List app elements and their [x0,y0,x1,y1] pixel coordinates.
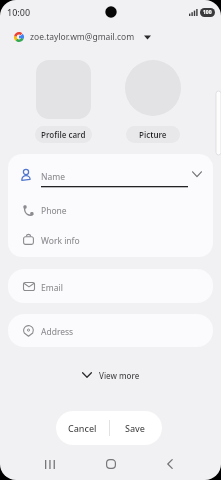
button[interactable] [158,452,182,476]
staticText: Address [41,326,74,338]
staticText: Name [41,171,65,183]
staticText: Phone [41,205,67,217]
staticText: Profile card [41,129,86,140]
button[interactable]: zoe.taylor.wm@gmail.com [14,28,151,46]
staticText: zoe.taylor.wm@gmail.com [30,31,135,43]
button[interactable]: Save [109,411,162,445]
button[interactable] [125,60,181,116]
button[interactable] [99,452,123,476]
button[interactable]: Email [8,269,213,303]
staticText: View more [99,370,140,381]
staticText: Picture [139,129,167,140]
staticText: Save [125,422,146,434]
button[interactable]: Name [8,161,213,194]
button[interactable]: Cancel [56,411,109,445]
staticText: Work info [41,235,80,247]
button[interactable]: Picture [126,126,180,143]
staticText: Email [41,282,63,294]
button[interactable]: Address [8,314,213,347]
staticText: 100 [203,9,212,16]
button[interactable]: Phone [8,198,213,230]
button[interactable] [38,452,62,476]
button[interactable]: View more [82,367,140,383]
button[interactable]: Profile card [35,126,92,143]
staticText: 10:00 [7,6,31,18]
button[interactable]: Work info [8,230,213,257]
staticText: Cancel [68,422,97,434]
